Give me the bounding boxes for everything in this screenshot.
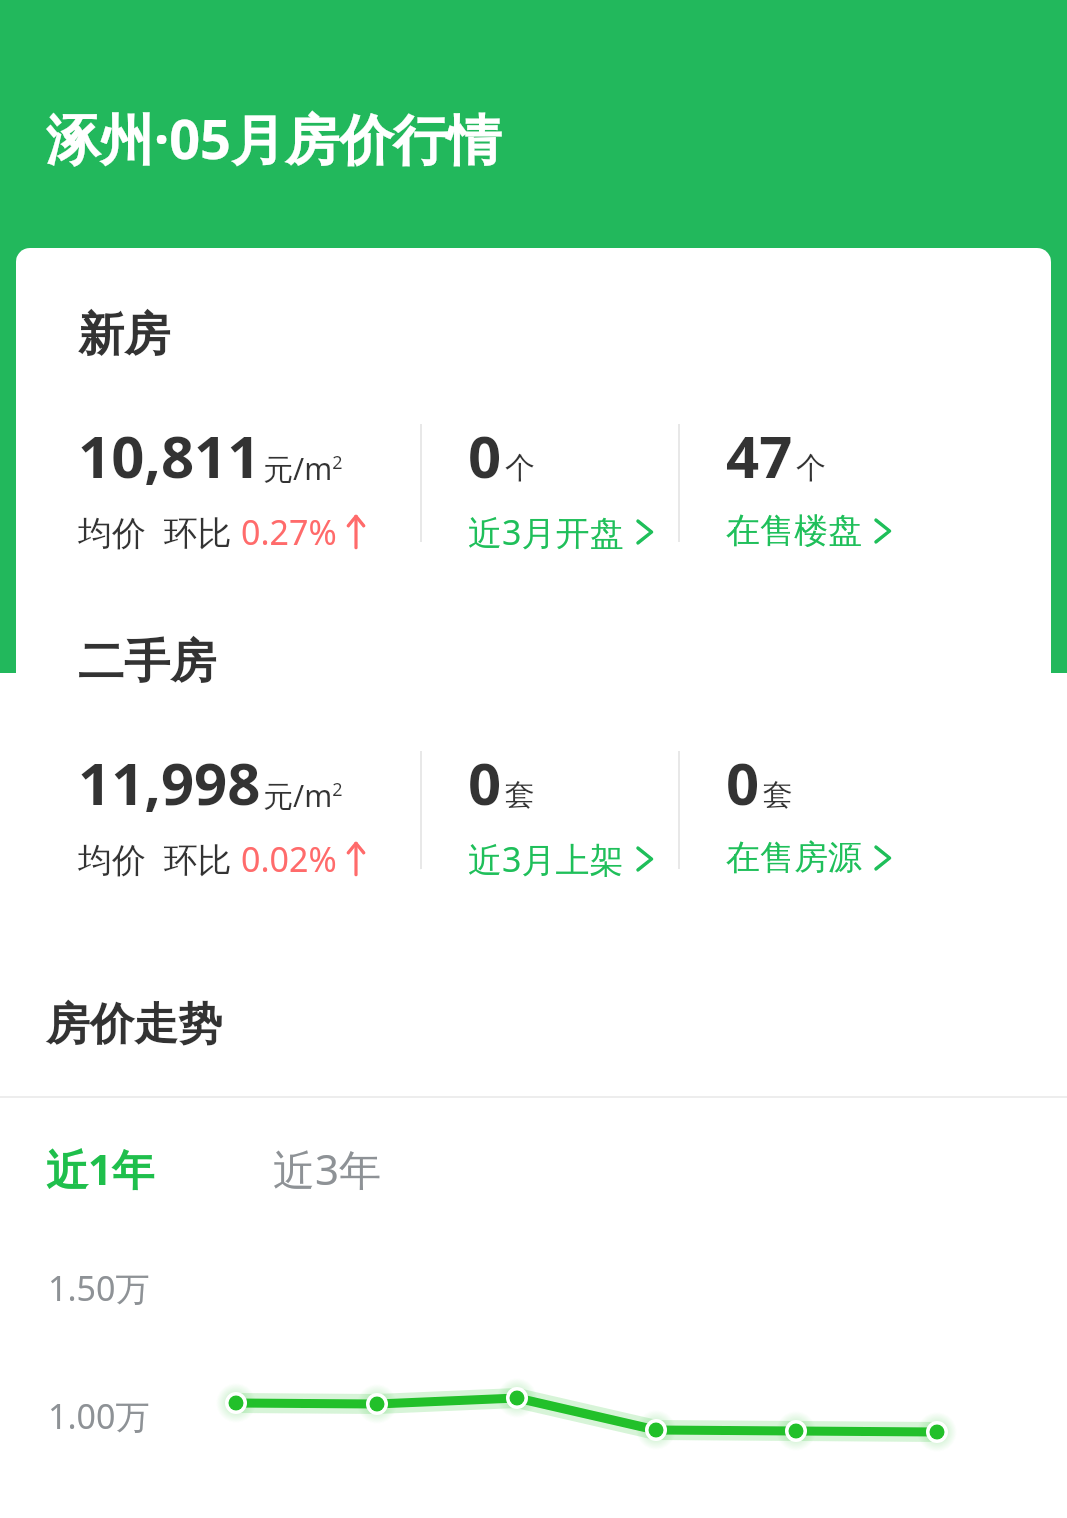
staticText: 涿州·05月房价行情 <box>46 101 501 175</box>
button[interactable]: 11,998 <box>78 743 420 882</box>
staticText: 0.27% <box>241 509 337 555</box>
staticText: 0 <box>726 743 760 822</box>
button[interactable]: 10,811 <box>78 416 420 555</box>
staticText: 11,998 <box>78 743 261 822</box>
staticText: 套 <box>763 776 793 814</box>
staticText: 近1年 <box>46 1140 155 1197</box>
button[interactable]: 0 <box>468 416 678 555</box>
staticText: 个 <box>796 449 826 487</box>
staticText: 在售房源 <box>726 836 862 879</box>
staticText: 0.02% <box>241 836 337 882</box>
staticText: 1.00万 <box>48 1393 150 1439</box>
staticText: 房价走势 <box>46 997 222 1052</box>
staticText: 套 <box>505 776 535 814</box>
button[interactable]: 近3年 <box>273 1140 382 1197</box>
staticText: 元/m2 <box>263 448 343 489</box>
staticText: 个 <box>505 449 535 487</box>
staticText: 0 <box>468 416 502 495</box>
staticText: 近3月上架 <box>468 836 624 882</box>
staticText: 均价 环比 <box>78 509 241 555</box>
button[interactable]: 0 <box>726 743 936 879</box>
staticText: 近3月开盘 <box>468 509 624 555</box>
staticText: 在售楼盘 <box>726 509 862 552</box>
staticText: 元/m2 <box>263 775 343 816</box>
button[interactable]: 近1年 <box>46 1140 155 1197</box>
staticText: 新房 <box>78 306 170 364</box>
button[interactable]: 0 <box>468 743 678 882</box>
staticText: 二手房 <box>78 633 216 691</box>
button[interactable]: 47 <box>726 416 936 552</box>
staticText: 0 <box>468 743 502 822</box>
staticText: 1.50万 <box>48 1265 150 1311</box>
staticText: 47 <box>726 416 793 495</box>
staticText: 近3年 <box>273 1140 382 1197</box>
staticText: 均价 环比 <box>78 836 241 882</box>
staticText: 10,811 <box>78 416 261 495</box>
